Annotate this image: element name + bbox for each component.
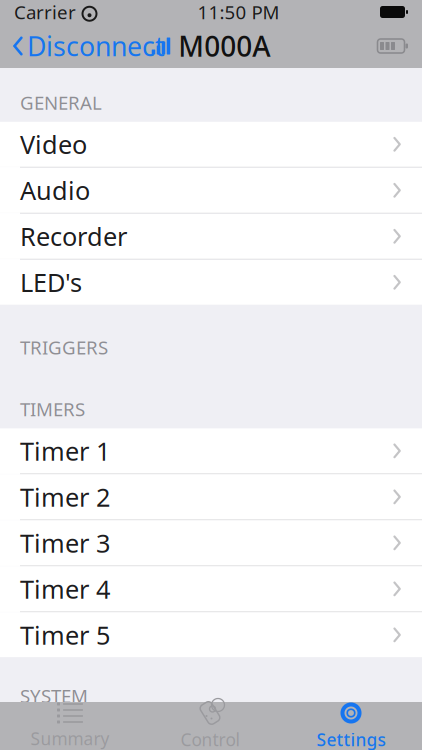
staticText: LED's — [20, 265, 82, 299]
staticText: TRIGGERS — [20, 335, 108, 360]
button[interactable]: Timer 5 — [0, 612, 422, 657]
staticText: Recorder — [20, 219, 127, 253]
staticText: Timer 1 — [20, 434, 110, 468]
staticText: Timer 5 — [20, 618, 110, 652]
staticText: TIMERS — [20, 397, 85, 421]
staticText: Settings — [316, 728, 385, 750]
button[interactable]: Control — [140, 702, 280, 750]
staticText: GENERAL — [20, 90, 102, 115]
button[interactable]: Timer 3 — [0, 520, 422, 565]
staticText: Carrier — [14, 0, 76, 24]
button[interactable]: Battery level — [363, 24, 422, 68]
staticText: Disconnect — [27, 28, 165, 64]
button[interactable]: Disconnect — [0, 24, 177, 68]
staticText: Video — [20, 127, 87, 161]
button[interactable]: Summary — [0, 702, 140, 750]
button[interactable]: Video — [0, 122, 422, 167]
staticText: Summary — [30, 727, 109, 750]
button[interactable]: Timer 4 — [0, 566, 422, 611]
button[interactable]: Recorder — [0, 214, 422, 259]
button[interactable]: Settings — [280, 702, 422, 750]
staticText: Timer 3 — [20, 526, 110, 560]
button[interactable]: Audio — [0, 168, 422, 213]
staticText: Timer 2 — [20, 480, 110, 514]
staticText: SYSTEM — [20, 683, 88, 708]
button[interactable]: Timer 1 — [0, 428, 422, 473]
staticText: M000A — [178, 27, 270, 65]
staticText: Audio — [20, 173, 90, 207]
button[interactable]: LED's — [0, 260, 422, 305]
button[interactable]: Timer 2 — [0, 474, 422, 519]
staticText: Timer 4 — [20, 572, 110, 606]
staticText: Control — [180, 728, 239, 750]
staticText: 11:50 PM — [197, 0, 279, 24]
